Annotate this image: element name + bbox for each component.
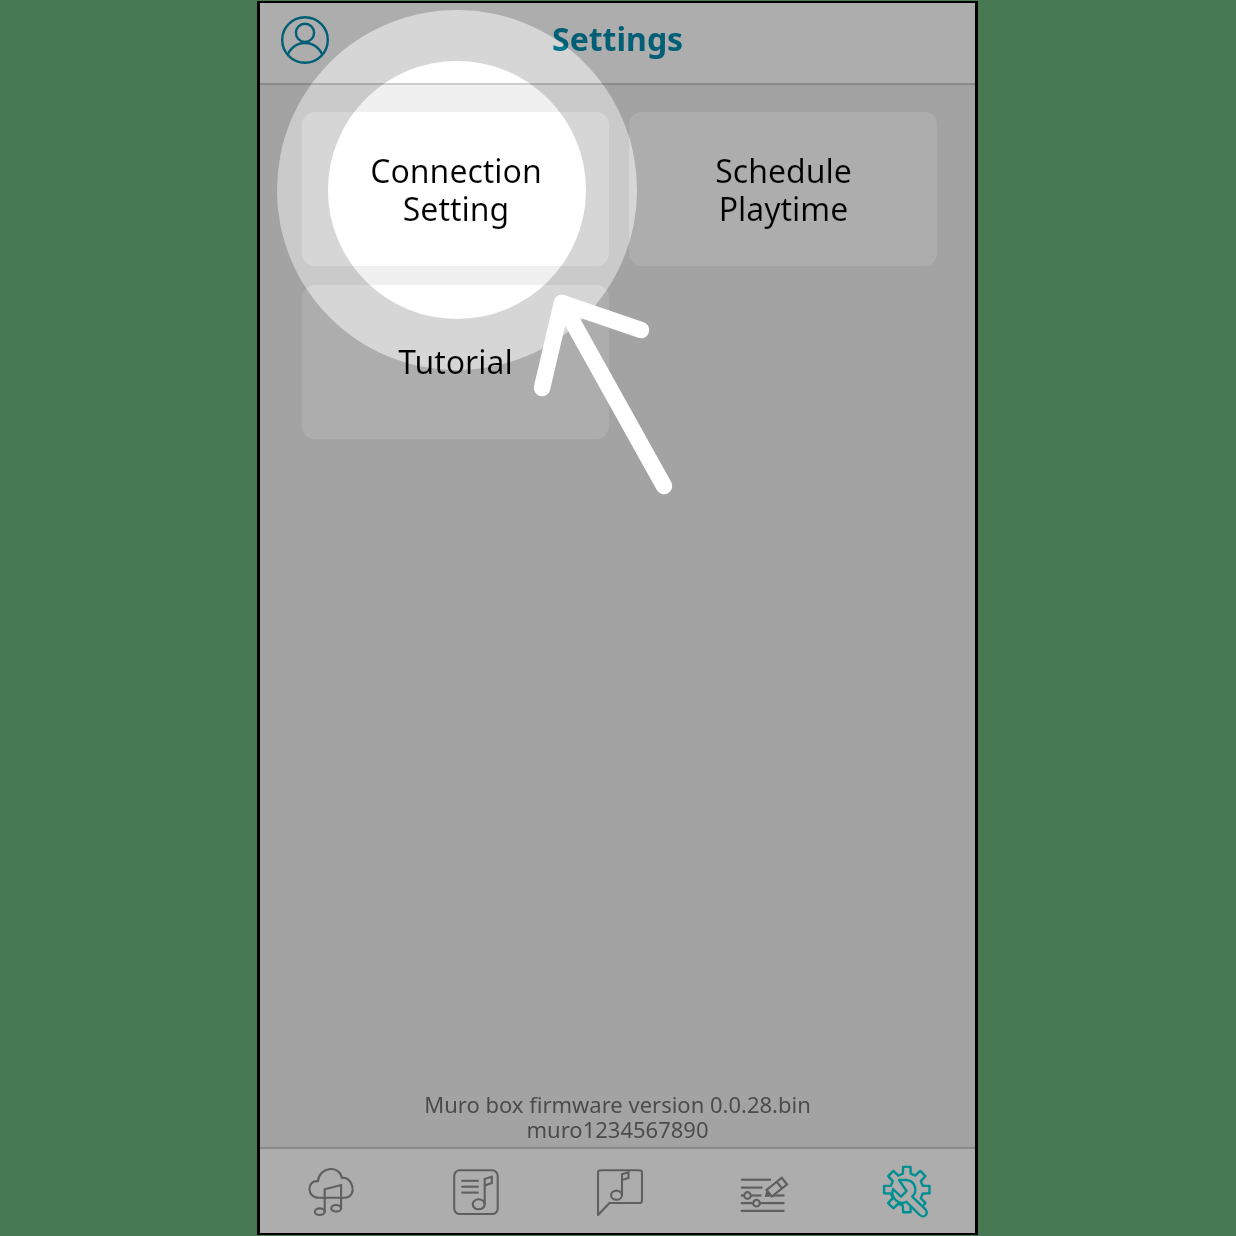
button[interactable]: Tutorial <box>302 285 609 439</box>
button[interactable]: Account <box>281 16 329 64</box>
staticText: Tutorial <box>398 340 513 384</box>
staticText: Schedule Playtime <box>715 149 852 230</box>
button[interactable]: Messages <box>548 1149 692 1233</box>
staticText: Connection Setting <box>370 149 542 230</box>
button[interactable]: Schedule Playtime <box>629 112 937 266</box>
button[interactable]: Compose <box>692 1149 836 1233</box>
button[interactable]: Connection Setting <box>302 112 609 266</box>
button[interactable]: Settings <box>836 1149 975 1233</box>
button[interactable]: Cloud music <box>260 1149 404 1233</box>
staticText: Muro box firmware version 0.0.28.bin mur… <box>260 1089 975 1145</box>
staticText: Settings <box>552 17 684 61</box>
button[interactable]: Music box <box>404 1149 548 1233</box>
